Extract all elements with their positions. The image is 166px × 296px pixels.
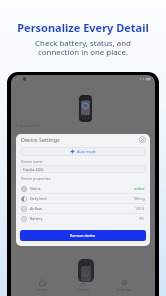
- staticText: 180mg: [133, 196, 145, 201]
- button[interactable]: Status: [21, 184, 145, 193]
- button[interactable]: Daily limit: [21, 194, 145, 203]
- staticText: Remove device: [70, 233, 96, 238]
- button[interactable]: Remove device: [20, 230, 146, 241]
- staticText: Device: [77, 287, 90, 292]
- staticText: Check battery, status, and connection in…: [35, 38, 131, 57]
- staticText: Device properties: [21, 176, 51, 181]
- staticText: Eiquila-4266: [23, 167, 44, 172]
- staticText: online: [134, 186, 145, 191]
- staticText: Home: [36, 287, 48, 292]
- staticText: Eiquila-4266: [16, 123, 41, 129]
- staticText: Personalize Every Detail: [17, 20, 149, 35]
- button[interactable]: Eiquila-4266: [20, 165, 146, 173]
- button[interactable]: Settings: [102, 279, 146, 292]
- staticText: Status: [30, 186, 41, 191]
- staticText: Battery: [30, 216, 43, 221]
- staticText: Daily limit: [30, 196, 47, 201]
- staticText: Device name: [21, 159, 43, 164]
- button[interactable]: Airflow: [21, 204, 145, 213]
- staticText: Settings: [116, 287, 132, 292]
- staticText: Airflow: [30, 206, 42, 211]
- staticText: Auto mode: [77, 149, 96, 154]
- button[interactable]: Close: [139, 136, 146, 143]
- staticText: 9%: [139, 216, 145, 221]
- button[interactable]: Home: [20, 279, 64, 292]
- staticText: 100%: [135, 206, 145, 211]
- button[interactable]: Device: [61, 279, 105, 292]
- staticText: Device Settings: [21, 136, 60, 143]
- button[interactable]: Battery: [21, 214, 145, 223]
- button[interactable]: Auto mode: [20, 147, 146, 156]
